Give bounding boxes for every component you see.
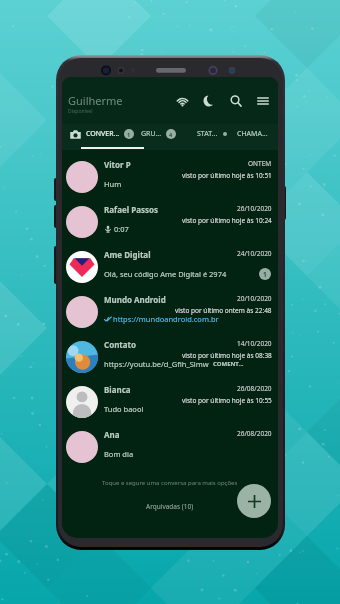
staticText: Bom dia [104, 449, 134, 459]
staticText: visto por último hoje às 10:51 [182, 171, 272, 180]
staticText: ONTEM [248, 159, 272, 168]
button[interactable]: Rafael Passos [62, 199, 278, 244]
staticText: 26/08/2020 [237, 429, 272, 438]
button[interactable]: CONVER... [86, 124, 134, 144]
staticText: 0:07 [114, 224, 129, 234]
staticText: Guilherme [68, 93, 123, 108]
staticText: 14/10/2020 [237, 339, 272, 348]
staticText: Mundo Android [104, 294, 166, 305]
button[interactable]: Ana [62, 424, 278, 469]
staticText: visto por último ontem às 22:48 [175, 306, 272, 315]
staticText: Toque e segure uma conversa para mais op… [102, 479, 238, 487]
staticText: STAT... [197, 129, 218, 139]
staticText: Olá, seu código Ame Digital é 2974 [104, 269, 227, 279]
staticText: https://mundoandroid.com.br [113, 314, 219, 324]
button[interactable]: Search [228, 93, 244, 109]
button[interactable]: Contato [62, 334, 278, 379]
staticText: visto por último hoje às 10:24 [182, 216, 272, 225]
staticText: 26/08/2020 [237, 384, 272, 393]
button[interactable]: GRU... [141, 124, 176, 144]
staticText: Hum [104, 179, 122, 189]
staticText: 4 [169, 131, 173, 138]
button[interactable]: New chat [237, 484, 271, 518]
button[interactable]: Night mode [201, 93, 217, 109]
button[interactable]: Vitor P [62, 154, 278, 199]
staticText: visto por último hoje às 10:55 [182, 396, 272, 405]
staticText: Arquivadas (10) [146, 502, 194, 511]
staticText: https://youtu.be/d_Gfih_Slmw [104, 359, 209, 369]
button[interactable]: Camera [66, 124, 84, 144]
staticText: GRU... [141, 129, 162, 139]
staticText: 26/10/2020 [237, 204, 272, 213]
button[interactable]: Wi-Fi [174, 93, 190, 109]
button[interactable]: Arquivadas (10) [144, 500, 196, 513]
staticText: 24/10/2020 [237, 249, 272, 258]
staticText: 1 [127, 131, 131, 138]
button[interactable]: CHAMA... [237, 124, 268, 144]
staticText: Disponível [68, 108, 93, 115]
button[interactable]: Mundo Android [62, 289, 278, 334]
staticText: Bianca [104, 384, 131, 395]
staticText: 1 [263, 270, 267, 279]
staticText: CONVER... [86, 129, 120, 139]
staticText: Rafael Passos [104, 204, 158, 215]
staticText: Ana [104, 429, 120, 440]
staticText: Ame Digital [104, 249, 151, 260]
staticText: Tudo baool [104, 404, 144, 414]
staticText: Vitor P [104, 159, 131, 170]
button[interactable]: Ame Digital [62, 244, 278, 289]
staticText: 20/10/2020 [237, 294, 272, 303]
staticText: visto por último hoje às 08:38 [182, 351, 272, 360]
staticText: Contato [104, 339, 137, 350]
button[interactable]: Bianca [62, 379, 278, 424]
button[interactable]: STAT... [197, 124, 227, 144]
staticText: CHAMA... [237, 129, 268, 139]
button[interactable]: Menu [255, 93, 271, 109]
staticText: COMENT... [213, 360, 244, 368]
